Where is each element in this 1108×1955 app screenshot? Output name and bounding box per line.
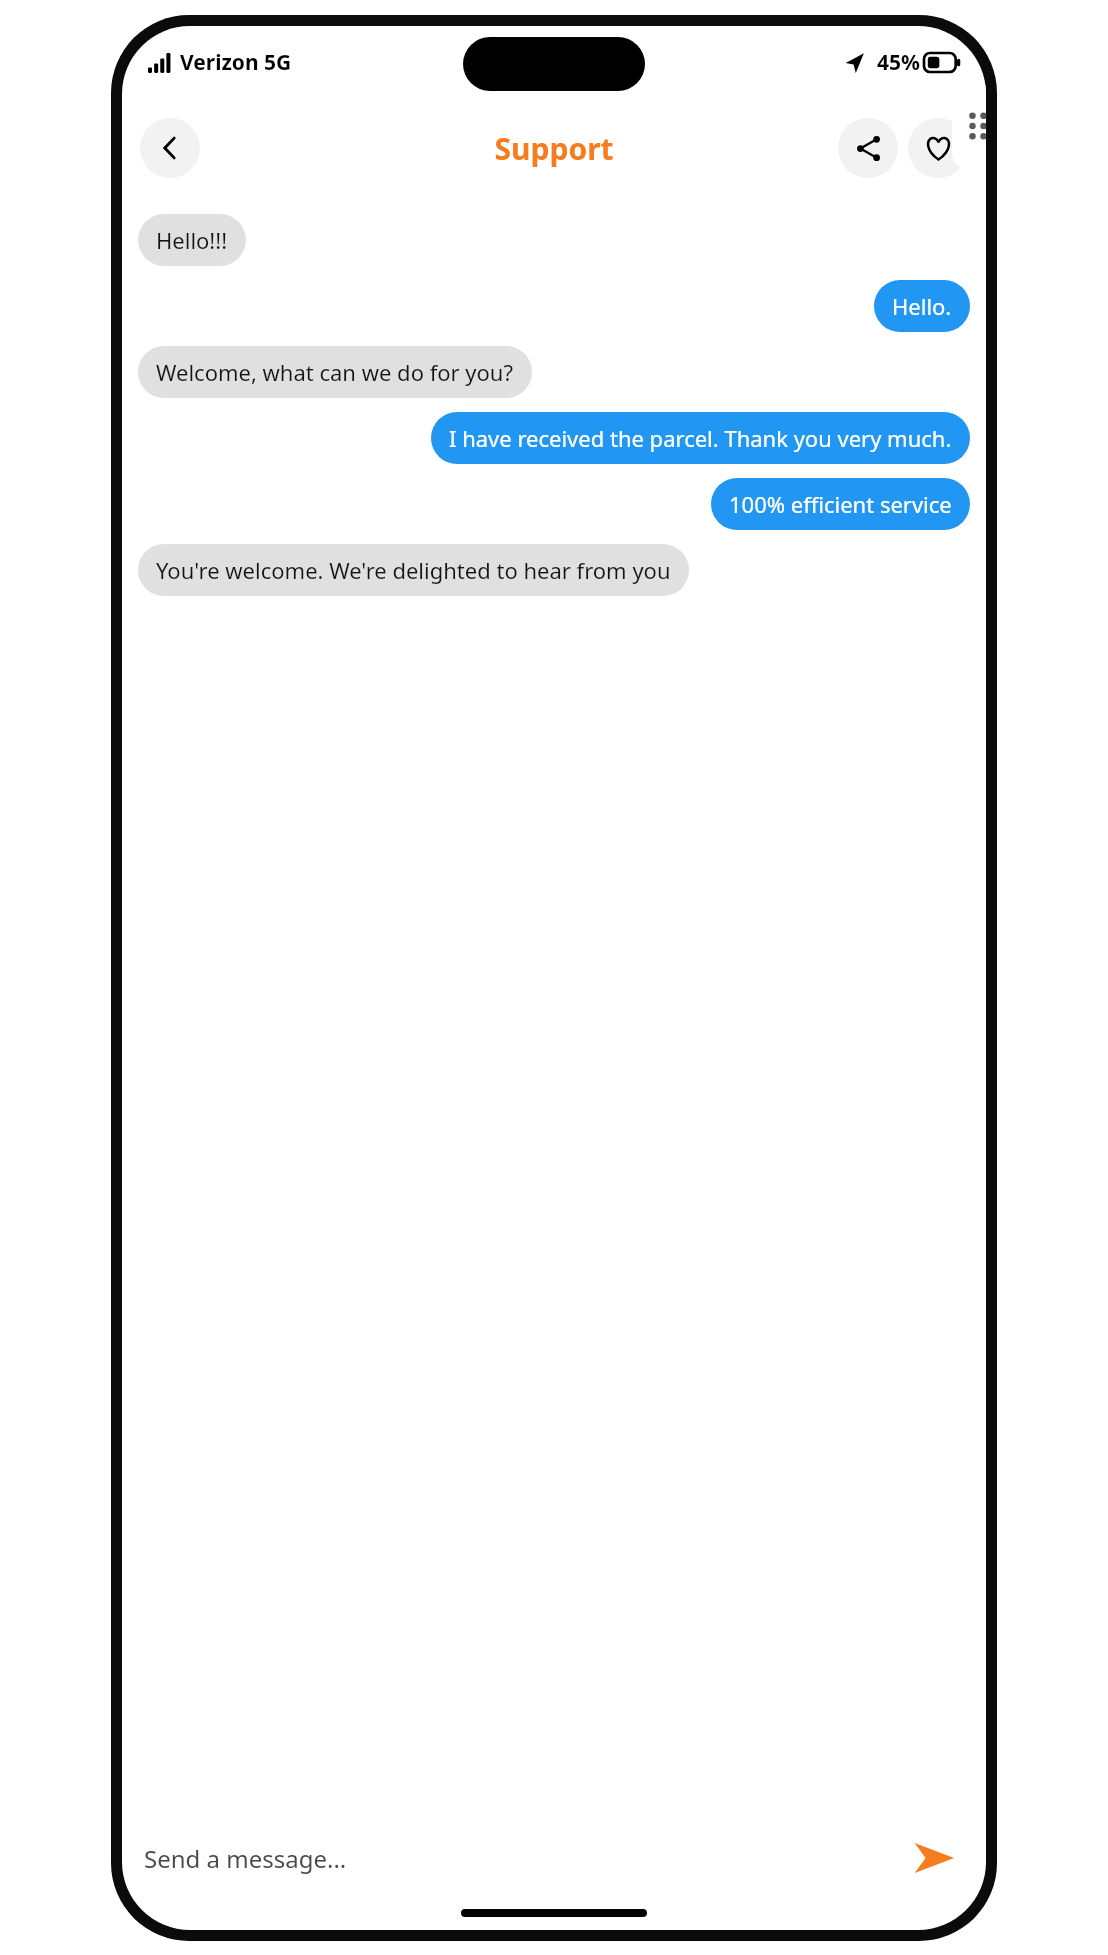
button[interactable]: Hello.	[874, 280, 970, 332]
staticText: Welcome, what can we do for you?	[156, 357, 514, 387]
staticText: 45%	[877, 48, 920, 77]
button[interactable]: Share	[838, 118, 898, 178]
button[interactable]: Hello!!!	[138, 214, 246, 266]
button[interactable]: I have received the parcel. Thank you ve…	[431, 412, 970, 464]
button[interactable]: 100% efficient service	[711, 478, 970, 530]
staticText: Send a message...	[144, 1842, 347, 1875]
button[interactable]: Favorite	[908, 118, 968, 178]
staticText: 100% efficient service	[729, 489, 952, 519]
button[interactable]: You're welcome. We're delighted to hear …	[138, 544, 689, 596]
button[interactable]: Send	[904, 1828, 964, 1888]
staticText: Hello!!!	[156, 225, 228, 255]
button[interactable]: Back	[140, 118, 200, 178]
staticText: Hello.	[892, 291, 952, 321]
button[interactable]: Send a message...	[144, 1820, 904, 1896]
button[interactable]: More options	[952, 84, 986, 168]
button[interactable]: Welcome, what can we do for you?	[138, 346, 532, 398]
staticText: I have received the parcel. Thank you ve…	[449, 423, 952, 453]
staticText: You're welcome. We're delighted to hear …	[156, 555, 671, 585]
staticText: Verizon 5G	[180, 48, 292, 77]
staticText: Support	[494, 128, 614, 169]
